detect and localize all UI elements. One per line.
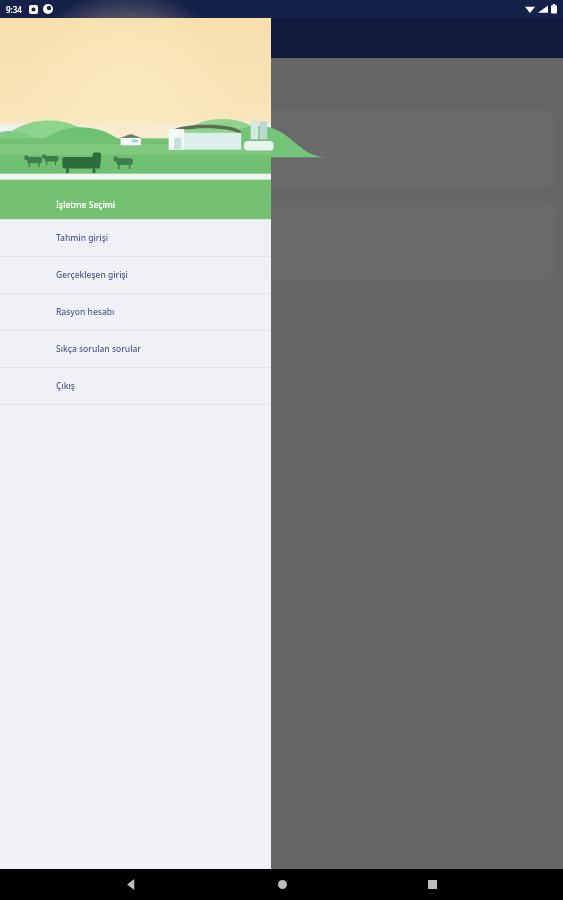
staticText: Sıkça sorulan sorular (56, 343, 141, 355)
button[interactable]: Home (262, 869, 302, 900)
staticText: Rasyon hesabı (56, 306, 115, 318)
button[interactable]: ÇİFTLİK HAYVANCILIK LİMİTED ŞİRKETİ) (8, 201, 555, 281)
button[interactable]: Gerçekleşen girişi (0, 257, 271, 293)
staticText: Çıkış (56, 380, 75, 392)
staticText: Gerçekleşen girişi (56, 269, 128, 281)
button[interactable]: Tahmin girişi (0, 220, 271, 256)
button[interactable]: Recent apps (412, 869, 452, 900)
button[interactable]: Back (111, 869, 151, 900)
button[interactable]: İşletme Seçimi (0, 190, 271, 219)
button[interactable]: Rasyon hesabı (0, 294, 271, 330)
button[interactable]: Çıkış (0, 368, 271, 404)
staticText: ÇİFTLİK HAYVANCILIK LİMİTED ŞİRKETİ) (18, 235, 184, 247)
staticText: İşletme Seçimi (56, 199, 116, 211)
staticText: Tahmin girişi (56, 232, 109, 244)
button[interactable]: Sıkça sorulan sorular (0, 331, 271, 367)
staticText: 9:34 (6, 4, 22, 15)
button[interactable] (8, 109, 555, 189)
